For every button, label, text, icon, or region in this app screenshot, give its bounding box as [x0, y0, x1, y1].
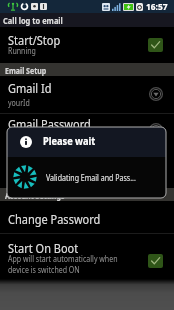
button[interactable]: Edit value	[149, 87, 163, 101]
staticText: Email Setup	[5, 65, 46, 76]
staticText: Call log to email	[3, 15, 63, 27]
button[interactable]	[0, 76, 174, 113]
button[interactable]	[0, 234, 174, 279]
staticText: Gmail Id	[8, 80, 52, 97]
staticText: Running	[8, 45, 36, 56]
staticText: yourId	[8, 97, 30, 108]
button[interactable]: Start on boot	[148, 254, 163, 268]
staticText: password	[8, 133, 41, 144]
staticText: 16:57	[146, 0, 168, 13]
button[interactable]	[0, 200, 174, 233]
staticText: Start/Stop	[8, 32, 61, 49]
button[interactable]	[0, 114, 174, 151]
staticText: Validating Email and Pass...	[46, 172, 137, 183]
staticText: Start On Boot	[8, 240, 78, 257]
staticText: Gmail Password	[8, 116, 92, 133]
button[interactable]: Start Stop service	[148, 38, 163, 52]
button[interactable]: Edit value	[149, 123, 163, 137]
staticText: Change Password	[8, 211, 100, 228]
staticText: App will start automatically when device…	[8, 253, 119, 275]
button[interactable]	[0, 27, 174, 63]
staticText: Account Settings	[5, 190, 65, 201]
staticText: Please wait	[43, 134, 96, 148]
